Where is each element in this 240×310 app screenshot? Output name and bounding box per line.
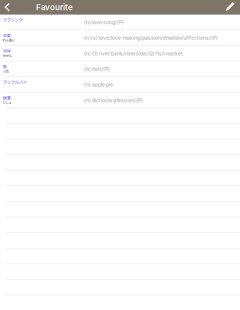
staticText: Favourite bbox=[36, 2, 73, 12]
staticText: (n,vs) love/love-making/passion/emotion/… bbox=[84, 35, 218, 41]
staticText: (n) fish/(P) bbox=[84, 66, 110, 72]
staticText: (n) love song/(P) bbox=[84, 19, 124, 25]
staticText: アップルパイ bbox=[3, 79, 27, 85]
staticText: 恋愛 bbox=[3, 32, 11, 38]
staticText: 辞書 bbox=[3, 95, 11, 101]
staticText: かがん bbox=[3, 53, 12, 58]
staticText: じしょ bbox=[3, 100, 12, 105]
staticText: ラブソング bbox=[3, 17, 23, 23]
staticText: 河岸 bbox=[3, 48, 11, 54]
button[interactable]: Back bbox=[0, 0, 14, 15]
staticText: れんあい bbox=[3, 38, 15, 42]
staticText: 魚 bbox=[3, 63, 7, 69]
staticText: (n) (1) river bank/riverside/(2) fish ma… bbox=[84, 51, 183, 57]
staticText: (n) apple pie bbox=[84, 82, 113, 88]
staticText: (n) dictionary/lexicon/(P) bbox=[84, 97, 143, 103]
staticText: うお bbox=[3, 69, 9, 74]
button[interactable]: Edit bbox=[225, 0, 237, 15]
